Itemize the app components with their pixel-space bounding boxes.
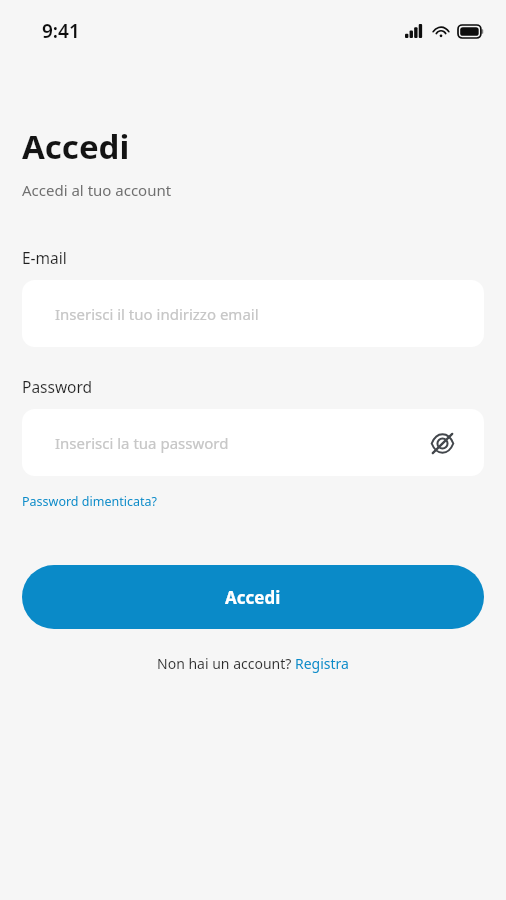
staticText: Inserisci la tua password xyxy=(55,433,229,453)
staticText: 9:41 xyxy=(42,18,80,44)
button[interactable]: Non hai un account? Registra xyxy=(22,654,484,673)
button[interactable]: Inserisci la tua password xyxy=(22,409,484,476)
staticText: Password dimenticata? xyxy=(22,493,157,510)
button[interactable]: Password dimenticata? xyxy=(22,493,157,510)
staticText: Inserisci il tuo indirizzo email xyxy=(55,304,259,324)
staticText: Password xyxy=(22,376,93,397)
button[interactable]: Accedi xyxy=(22,565,484,629)
staticText: E-mail xyxy=(22,247,67,268)
staticText: Accedi xyxy=(22,124,130,169)
staticText: Accedi al tuo account xyxy=(22,180,172,200)
button[interactable]: Show password xyxy=(426,427,458,459)
staticText: Accedi xyxy=(225,586,281,609)
staticText: Non hai un account? Registra xyxy=(157,654,349,673)
button[interactable]: Inserisci il tuo indirizzo email xyxy=(22,280,484,347)
